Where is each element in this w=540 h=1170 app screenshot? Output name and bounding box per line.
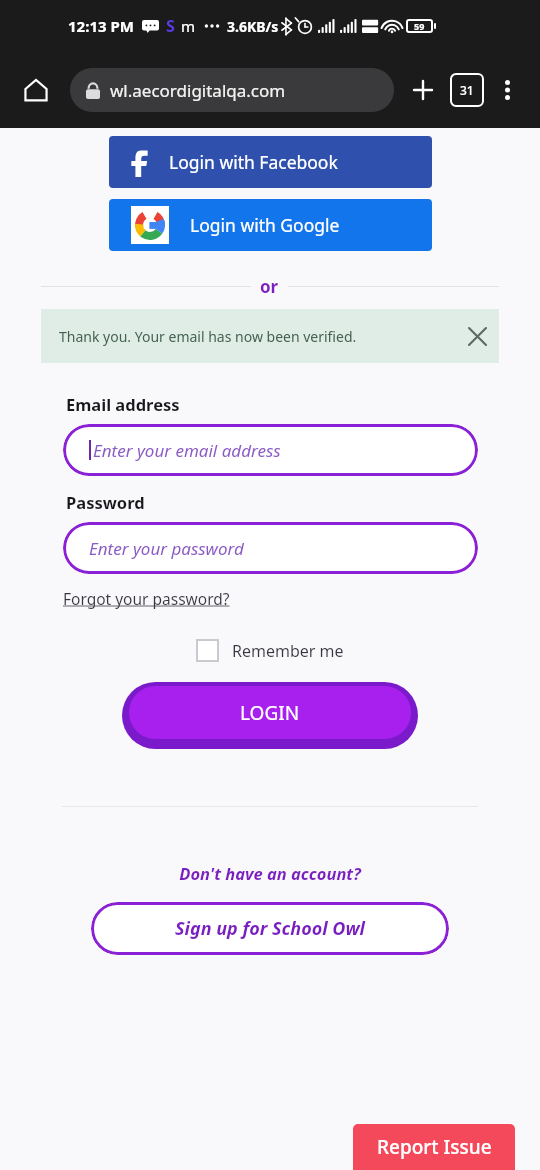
staticText: 59 <box>414 20 425 32</box>
staticText: Sign up for School Owl <box>175 916 365 941</box>
staticText: Password <box>66 491 145 513</box>
staticText: LOGIN <box>240 700 300 726</box>
staticText: m <box>181 16 196 36</box>
staticText: Enter your password <box>89 537 244 560</box>
staticText: or <box>260 275 279 298</box>
staticText: Forgot your password? <box>63 588 230 609</box>
button[interactable]: Remember me <box>196 639 344 662</box>
staticText: 12:13 PM <box>68 16 134 36</box>
staticText: Enter your email address <box>93 439 281 462</box>
staticText: S <box>166 15 175 37</box>
button[interactable]: Enter your email address <box>63 424 478 476</box>
button[interactable]: Tabs: 31 open <box>450 73 484 107</box>
staticText: Don't have an account? <box>0 862 540 884</box>
staticText: Login with Google <box>190 213 340 237</box>
staticText: Email address <box>66 393 180 415</box>
button[interactable]: Report Issue <box>353 1124 515 1170</box>
staticText: Login with Facebook <box>169 150 338 174</box>
button[interactable]: Enter your password <box>63 522 478 574</box>
button[interactable]: Home <box>16 70 56 110</box>
button[interactable]: More options <box>490 73 524 107</box>
button[interactable]: Dismiss <box>455 314 499 358</box>
button[interactable]: Login with Google <box>109 199 432 251</box>
staticText: Thank you. Your email has now been verif… <box>59 327 455 346</box>
button[interactable]: New tab <box>404 71 442 109</box>
staticText: 3.6KB/s <box>227 17 279 36</box>
staticText: wl.aecordigitalqa.com <box>110 79 286 102</box>
button[interactable]: Forgot your password? <box>63 588 230 609</box>
button[interactable]: wl.aecordigitalqa.com <box>70 68 394 112</box>
staticText: Report Issue <box>377 1134 492 1160</box>
button[interactable]: Login with Facebook <box>109 136 432 188</box>
staticText: Remember me <box>232 640 344 662</box>
button[interactable]: LOGIN <box>122 682 418 749</box>
button[interactable]: Sign up for School Owl <box>91 902 449 955</box>
staticText: 31 <box>460 82 474 98</box>
